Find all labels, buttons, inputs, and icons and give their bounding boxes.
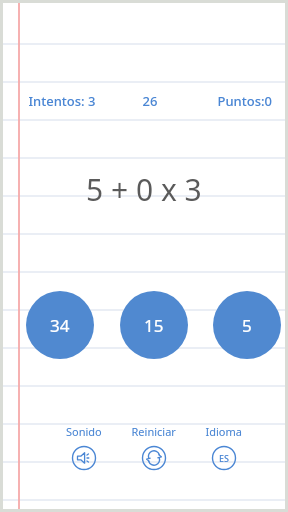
button[interactable]: Sonido — [48, 420, 120, 478]
button[interactable] — [26, 291, 94, 359]
button[interactable] — [120, 291, 188, 359]
button[interactable]: Reiniciar — [118, 420, 190, 478]
button[interactable] — [213, 291, 281, 359]
button[interactable]: Idioma — [188, 420, 260, 478]
